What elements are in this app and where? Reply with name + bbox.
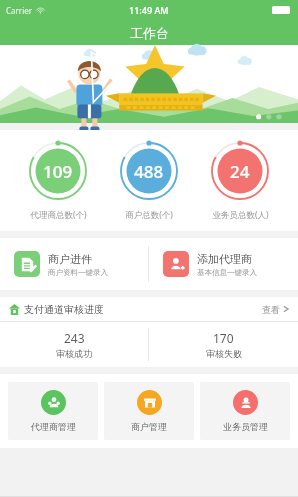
staticText: 支付通道审核进度 [24,303,104,316]
staticText: 基本信息一键录入 [197,268,257,277]
button[interactable]: 商户进件 [0,238,148,290]
staticText: 109 [43,160,73,183]
button[interactable]: 109 [25,140,91,221]
staticText: 商户资料一键录入 [48,268,108,277]
staticText: 业务员管理 [223,421,268,432]
staticText: 商户管理 [131,421,167,432]
staticText: 商户总数(个) [125,209,173,221]
staticText: 243 [64,330,85,346]
button[interactable]: 支付通道审核进度 [0,297,298,321]
staticText: 审核成功 [56,348,92,359]
button[interactable]: 24 [207,140,273,221]
staticText: Carrier [6,5,33,16]
staticText: 11:49 AM [129,4,169,16]
staticText: 添加代理商 [197,252,252,266]
staticText: 审核失败 [206,348,242,359]
staticText: 业务员总数(人) [212,209,269,221]
button[interactable]: 添加代理商 [149,238,298,290]
staticText: 工作台 [130,25,169,41]
staticText: 代理商总数(个) [30,209,87,221]
staticText: 查看 [262,304,280,315]
staticText: 商户进件 [48,252,92,266]
staticText: 488 [134,160,164,183]
staticText: 24 [230,160,250,183]
button[interactable]: 商户管理 [104,382,194,440]
button[interactable]: 代理商管理 [8,382,98,440]
button[interactable]: 488 [116,140,182,221]
staticText: 代理商管理 [31,421,76,432]
staticText: 170 [213,330,234,346]
button[interactable]: 243 [0,322,148,367]
button[interactable]: 业务员管理 [200,382,290,440]
button[interactable]: 170 [149,322,298,367]
